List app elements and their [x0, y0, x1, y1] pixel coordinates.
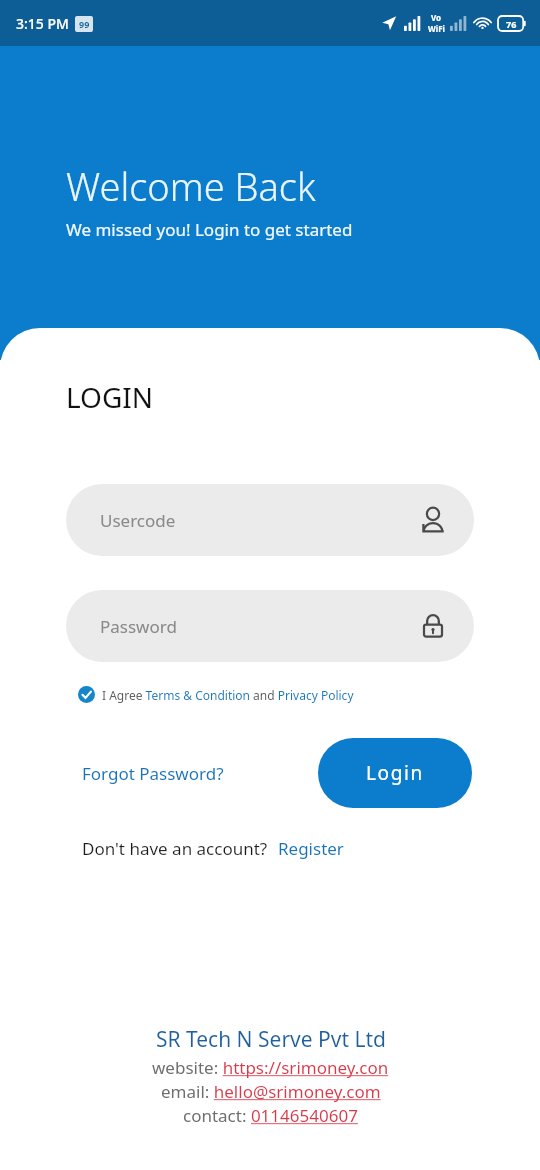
staticText: 99	[79, 18, 90, 30]
button[interactable]: website: https://srimoney.con	[152, 1056, 389, 1079]
staticText: Welcome Back	[66, 160, 316, 212]
staticText: Password	[100, 615, 177, 638]
button[interactable]: Forgot Password?	[82, 762, 224, 785]
button[interactable]: contact: 01146540607	[183, 1104, 358, 1127]
staticText: 76	[506, 18, 517, 30]
staticText: Forgot Password?	[82, 762, 224, 785]
staticText: LOGIN	[66, 378, 154, 416]
other: Password	[418, 611, 448, 641]
button[interactable]: I Agree Terms & Condition and Privacy Po…	[78, 684, 354, 705]
button[interactable]: Login	[318, 738, 472, 808]
staticText: We missed you! Login to get started	[66, 218, 353, 241]
staticText: Don't have an account?	[82, 837, 268, 860]
button[interactable]: Register	[278, 837, 344, 860]
staticText: Register	[278, 837, 344, 860]
button[interactable]: Usercode	[66, 484, 474, 556]
button[interactable]: email: hello@srimoney.com	[161, 1080, 381, 1103]
button[interactable]: Password	[66, 590, 474, 662]
staticText: I Agree Terms & Condition and Privacy Po…	[102, 687, 354, 703]
staticText: SR Tech N Serve Pvt Ltd	[156, 1025, 386, 1054]
staticText: Usercode	[100, 509, 176, 532]
staticText: 3:15 PM	[16, 14, 69, 33]
staticText: WiFi	[428, 23, 445, 34]
staticText: contact: 01146540607	[183, 1104, 358, 1127]
staticText: website: https://srimoney.con	[152, 1056, 389, 1079]
staticText: email: hello@srimoney.com	[161, 1080, 381, 1103]
staticText: Login	[366, 760, 424, 786]
staticText: Vo	[431, 12, 442, 23]
other: Usercode	[418, 505, 448, 535]
